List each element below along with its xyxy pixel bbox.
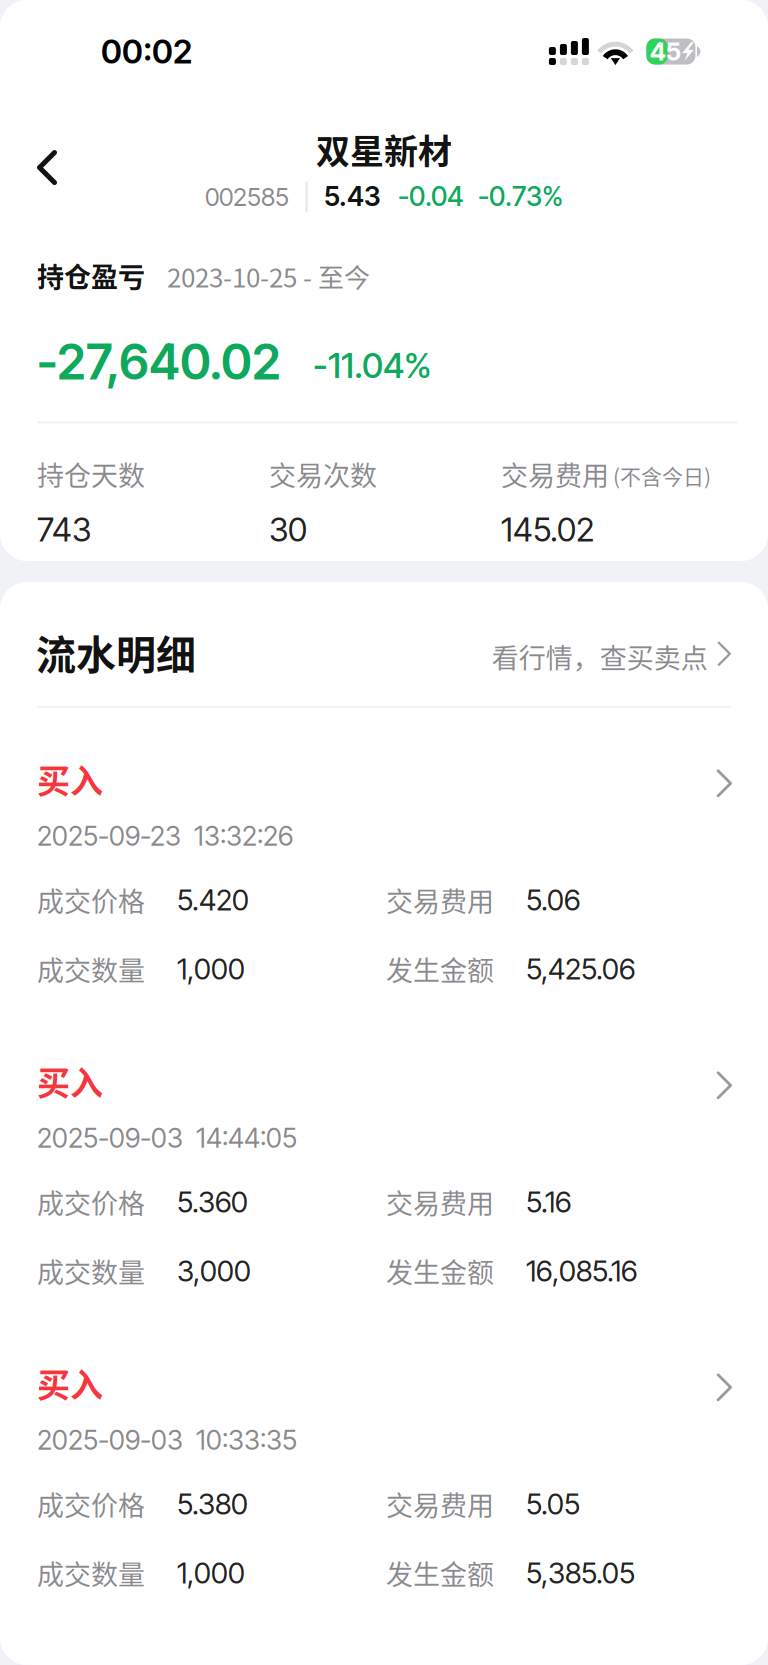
staticText: 交易费用 <box>386 1182 494 1221</box>
staticText: 交易费用 <box>386 1484 494 1523</box>
staticText: 发生金额 <box>386 1251 494 1291</box>
staticText: 10:33:35 <box>196 1424 297 1456</box>
staticText: 145.02 <box>501 509 594 549</box>
staticText: 743 <box>37 509 91 549</box>
staticText: 交易费用 <box>501 454 609 493</box>
staticText: 5.360 <box>177 1184 248 1219</box>
staticText: 5.43 <box>324 180 381 212</box>
staticText: -11.04% <box>313 344 432 386</box>
button[interactable]: Back <box>9 129 85 205</box>
staticText: 交易费用 <box>386 880 494 919</box>
staticText: 45 <box>650 36 681 67</box>
staticText: -27,640.02 <box>37 332 281 391</box>
staticText: -0.04 <box>398 180 464 212</box>
staticText: 2025-09-03 <box>37 1424 183 1456</box>
staticText: 成交数量 <box>37 1251 145 1291</box>
staticText: 5,425.06 <box>526 951 635 987</box>
staticText: 发生金额 <box>386 949 494 989</box>
staticText: 14:44:05 <box>196 1122 297 1154</box>
button[interactable]: 买入 <box>0 1010 768 1312</box>
staticText: 1,000 <box>177 1555 245 1591</box>
staticText: 成交价格 <box>37 1182 145 1221</box>
staticText: | <box>303 182 310 212</box>
staticText: 00:02 <box>101 31 192 71</box>
staticText: 5.16 <box>526 1184 571 1219</box>
staticText: (不含今日) <box>613 460 711 490</box>
staticText: 看行情，查买卖点 <box>492 637 708 676</box>
staticText: 买入 <box>37 1359 103 1407</box>
staticText: 5.06 <box>526 882 580 917</box>
staticText: 交易次数 <box>269 454 377 493</box>
staticText: 13:32:26 <box>194 820 293 852</box>
button[interactable]: 买入 <box>0 708 768 1010</box>
staticText: 1,000 <box>177 951 245 987</box>
staticText: 5.380 <box>177 1486 248 1521</box>
staticText: 成交价格 <box>37 880 145 919</box>
staticText: 002585 <box>205 182 289 212</box>
button[interactable]: 流水明细 <box>0 582 768 706</box>
staticText: 发生金额 <box>386 1553 494 1593</box>
staticText: 30 <box>269 509 307 549</box>
staticText: 持仓天数 <box>37 454 145 493</box>
staticText: 3,000 <box>177 1253 251 1289</box>
staticText: 16,085.16 <box>526 1253 637 1289</box>
staticText: 持仓盈亏 <box>37 256 145 295</box>
staticText: 2023-10-25 - 至今 <box>167 257 370 295</box>
staticText: 2025-09-23 <box>37 820 181 852</box>
staticText: 5,385.05 <box>526 1555 635 1591</box>
staticText: 买入 <box>37 1057 103 1105</box>
staticText: 流水明细 <box>36 623 196 681</box>
staticText: 5.420 <box>177 882 249 917</box>
button[interactable]: 买入 <box>0 1312 768 1614</box>
staticText: 成交价格 <box>37 1484 145 1523</box>
staticText: 成交数量 <box>37 1553 145 1593</box>
staticText: 2025-09-03 <box>37 1122 183 1154</box>
staticText: 5.05 <box>526 1486 580 1521</box>
staticText: 成交数量 <box>37 949 145 989</box>
staticText: -0.73% <box>478 180 563 212</box>
staticText: 双星新材 <box>316 124 452 174</box>
staticText: 买入 <box>37 755 103 803</box>
